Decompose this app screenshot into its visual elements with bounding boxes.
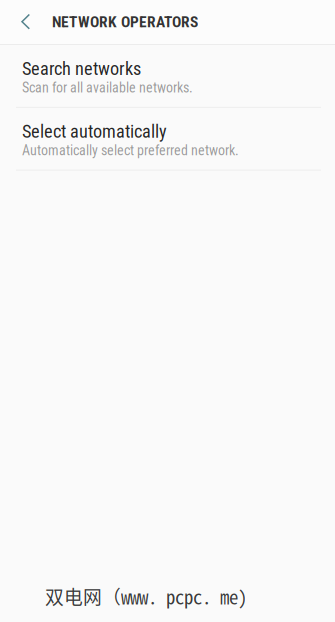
staticText: Search networks bbox=[22, 58, 141, 79]
button[interactable]: Select automatically bbox=[0, 108, 335, 170]
button[interactable]: Search networks bbox=[0, 45, 335, 107]
staticText: 双电网（www. pcpc. me) bbox=[45, 583, 247, 610]
staticText: Scan for all available networks. bbox=[22, 79, 193, 96]
staticText: NETWORK OPERATORS bbox=[52, 13, 198, 31]
staticText: Select automatically bbox=[22, 121, 167, 142]
staticText: Automatically select preferred network. bbox=[22, 142, 239, 159]
button[interactable]: Back bbox=[0, 0, 45, 44]
